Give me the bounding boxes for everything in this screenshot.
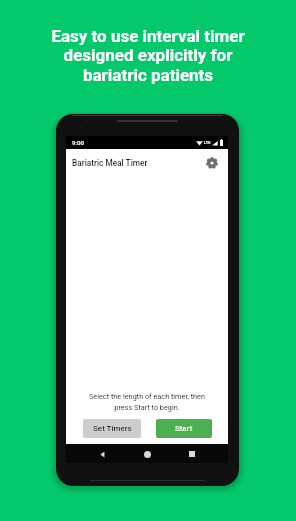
button[interactable]: Set Timers [83,419,141,438]
button[interactable]: Back [93,445,111,463]
staticText: Start [175,424,193,433]
staticText: LTE [204,140,211,145]
button[interactable]: Home [138,445,156,463]
staticText: Select the length of each timer, then pr… [89,392,205,412]
staticText: 9:00 [72,139,84,146]
button[interactable]: Recents [183,445,201,463]
staticText: Easy to use interval timer designed expl… [0,26,296,86]
staticText: Set Timers [93,424,132,433]
button[interactable]: Settings [205,156,219,170]
staticText: Bariatric Meal Timer [72,158,148,168]
button[interactable]: Start [156,419,212,438]
